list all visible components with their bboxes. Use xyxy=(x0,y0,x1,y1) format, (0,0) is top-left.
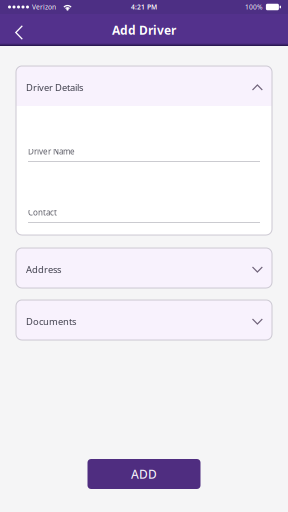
staticText: 4:21 PM xyxy=(131,3,157,11)
staticText: ADD xyxy=(131,466,157,482)
button[interactable]: Address xyxy=(16,248,272,288)
button[interactable]: Documents xyxy=(16,300,272,340)
staticText: 100% xyxy=(245,3,263,11)
staticText: Driver Name xyxy=(28,146,75,157)
staticText: Documents xyxy=(26,315,76,328)
staticText: Add Driver xyxy=(112,22,176,38)
staticText: Driver Details xyxy=(26,81,83,94)
staticText: Contact xyxy=(28,207,57,218)
staticText: Address xyxy=(26,263,61,276)
button[interactable]: Back xyxy=(0,14,38,46)
button[interactable]: ADD xyxy=(87,459,200,489)
button[interactable]: Driver Details xyxy=(16,66,272,106)
staticText: Verizon xyxy=(32,3,56,11)
